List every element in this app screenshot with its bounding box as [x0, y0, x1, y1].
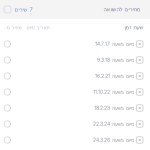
- staticText: סיום בשעה 18.2.23: [93, 105, 133, 111]
- staticText: סיום בשעה 11.10.22: [92, 89, 133, 95]
- staticText: סיום בשעה 14.7.17: [94, 41, 133, 47]
- staticText: 7 שירים: [14, 6, 32, 13]
- button[interactable]: סיום בשעה 16.2.21: [0, 68, 150, 84]
- button[interactable]: סיום בשעה 14.7.17: [0, 36, 150, 52]
- staticText: תאריך סיום: [26, 25, 49, 30]
- staticText: סיום בשעה 24.3.26: [92, 137, 133, 143]
- staticText: סיום בשעה 16.2.21: [94, 73, 133, 79]
- button[interactable]: 7 שירים: [4, 6, 32, 13]
- staticText: סיום בשעה 22.3.24: [92, 121, 133, 127]
- staticText: סיום בשעה 9.3.18: [96, 57, 133, 63]
- button[interactable]: סיום בשעה 22.3.24: [0, 116, 150, 132]
- button[interactable]: סיום בשעה 18.2.23: [0, 100, 150, 116]
- button[interactable]: סיום בשעה 9.3.18: [0, 52, 150, 68]
- staticText: מחירים להשוואה: [103, 6, 140, 13]
- staticText: שעת זמן: [124, 24, 143, 31]
- staticText: מחיר מ-: [4, 25, 21, 30]
- button[interactable]: סיום בשעה 11.10.22: [0, 84, 150, 100]
- button[interactable]: סיום בשעה 24.3.26: [0, 132, 150, 148]
